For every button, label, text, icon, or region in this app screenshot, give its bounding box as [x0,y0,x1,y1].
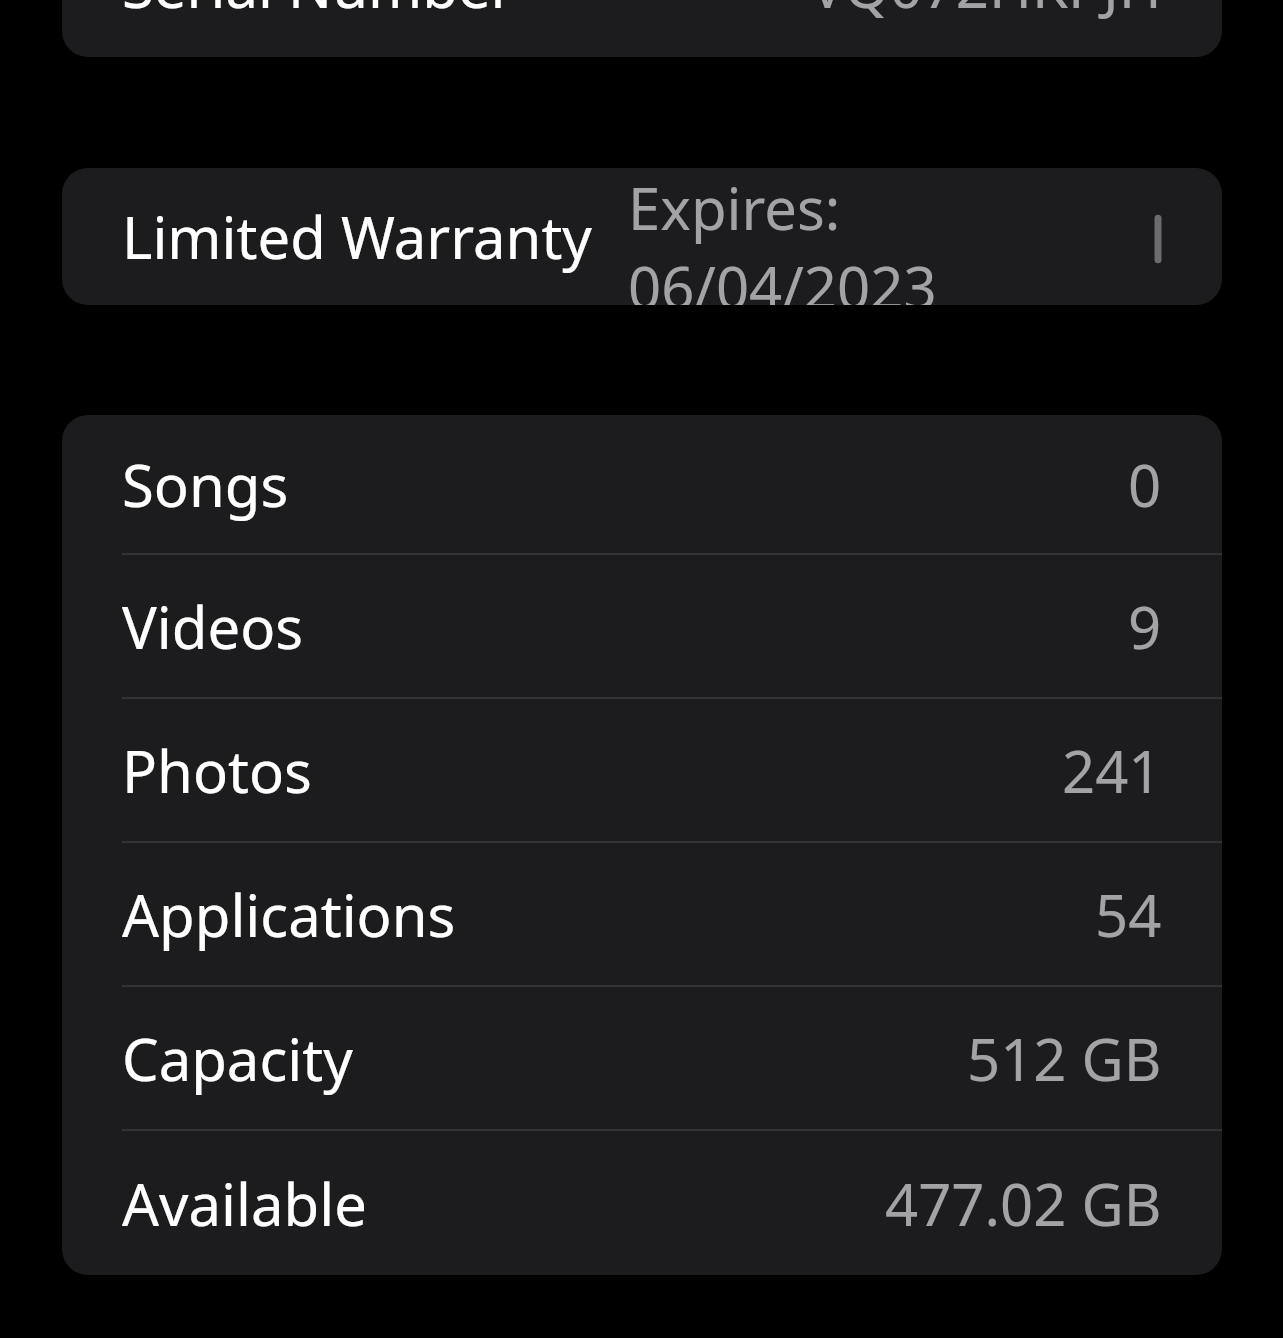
staticText: Limited Warranty [122,197,592,276]
staticText: 54 [1095,875,1162,954]
staticText: 241 [1062,731,1162,810]
staticText: Songs [122,445,289,524]
staticText: 477.02 GB [885,1164,1162,1243]
button[interactable]: Songs [62,415,1222,553]
staticText: 9 [1128,587,1162,666]
button[interactable]: Videos [62,555,1222,697]
staticText: Photos [122,731,312,810]
staticText: Serial Number [122,0,515,25]
staticText: 512 GB [967,1019,1162,1098]
staticText: 0 [1128,445,1162,524]
button[interactable]: Applications [62,843,1222,985]
button[interactable]: Capacity [62,987,1222,1129]
button[interactable]: Limited Warranty, Expires 06/04/2023 [62,168,1222,305]
staticText: Expires: 06/04/2023 [628,168,1158,305]
staticText: Available [122,1164,367,1243]
staticText: Videos [122,587,304,666]
button[interactable]: Available [62,1131,1222,1275]
staticText: Applications [122,875,456,954]
staticText: VQ072HKPJH [810,0,1162,25]
button[interactable]: Serial Number [62,0,1222,57]
staticText: Capacity [122,1019,353,1098]
button[interactable]: Photos [62,699,1222,841]
